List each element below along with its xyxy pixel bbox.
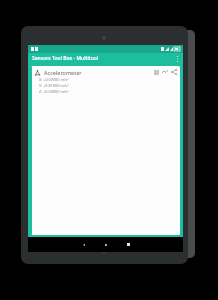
button[interactable]: Graph [161,68,169,76]
staticText: Z: +0.00000 m/s² [39,89,69,94]
button[interactable]: More options [172,53,183,64]
staticText: X: +0.00000 m/s² [39,77,69,82]
button[interactable]: Share [170,68,178,76]
button[interactable]: Back [73,237,95,252]
button[interactable]: Accelerometer [31,66,180,235]
button[interactable]: Record [152,68,160,76]
staticText: Y: +9.81000 m/s² [39,83,69,88]
button[interactable]: Recent apps [117,237,139,252]
button[interactable]: Home [95,237,117,252]
staticText: Accelerometer [44,69,152,76]
staticText: Sensors Tool Box - Multitool [32,55,99,62]
